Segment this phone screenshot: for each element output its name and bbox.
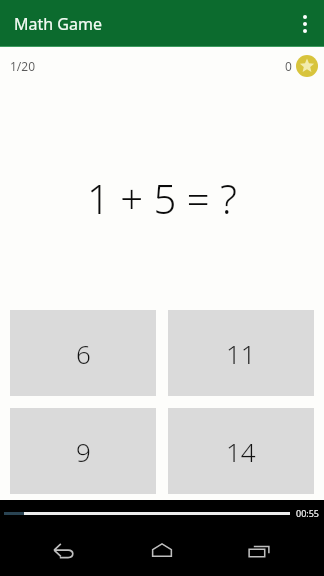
staticText: 14 xyxy=(226,434,256,469)
staticText: 1 + 5 = ? xyxy=(87,171,237,225)
button[interactable]: 14 xyxy=(168,408,314,494)
button[interactable]: More options xyxy=(286,0,324,47)
staticText: 00:55 xyxy=(296,507,320,519)
button[interactable]: Back xyxy=(33,530,97,572)
button[interactable]: Recent apps xyxy=(227,530,291,572)
staticText: 9 xyxy=(76,434,91,469)
staticText: 6 xyxy=(76,336,91,371)
staticText: 0 xyxy=(285,58,292,74)
button[interactable]: 9 xyxy=(10,408,156,494)
button[interactable]: 6 xyxy=(10,310,156,396)
button[interactable]: 11 xyxy=(168,310,314,396)
button[interactable]: Home xyxy=(130,530,194,572)
staticText: 1/20 xyxy=(10,58,36,74)
staticText: 11 xyxy=(226,336,256,371)
staticText: Math Game xyxy=(14,13,102,35)
